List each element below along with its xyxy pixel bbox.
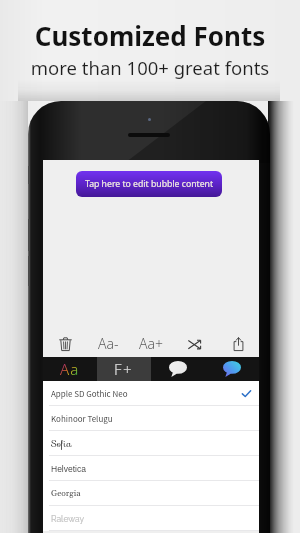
button[interactable]: Blue chat bubble bbox=[205, 357, 259, 381]
button[interactable]: Aa+ bbox=[133, 328, 170, 359]
staticText: Aa- bbox=[98, 334, 119, 353]
staticText: Kohinoor Telugu bbox=[51, 413, 113, 425]
button[interactable]: Aa bbox=[43, 357, 97, 381]
staticText: Aa bbox=[60, 359, 80, 379]
staticText: Customized Fonts bbox=[0, 18, 300, 53]
button[interactable]: Kohinoor Telugu bbox=[43, 406, 259, 431]
button[interactable]: Raleway bbox=[43, 506, 259, 531]
button[interactable]: Shuffle bbox=[184, 333, 206, 355]
staticText: Georgia bbox=[51, 488, 81, 499]
button[interactable]: Aa- bbox=[92, 328, 125, 359]
button[interactable]: Tap here to edit bubble content bbox=[76, 171, 222, 197]
button[interactable]: F+ bbox=[97, 357, 151, 381]
button[interactable]: Georgia bbox=[43, 481, 259, 506]
button[interactable]: Chat bubble bbox=[151, 357, 205, 381]
staticText: more than 100+ great fonts bbox=[0, 55, 300, 80]
button[interactable]: Share bbox=[227, 333, 249, 355]
staticText: F+ bbox=[114, 359, 134, 379]
staticText: Helvetica bbox=[51, 464, 86, 473]
staticText: Aa+ bbox=[139, 334, 164, 353]
button[interactable]: Apple SD Gothic Neo bbox=[43, 381, 259, 406]
staticText: Apple SD Gothic Neo bbox=[51, 388, 128, 400]
button[interactable]: Helvetica bbox=[43, 456, 259, 481]
button[interactable]: Delete bbox=[54, 333, 76, 355]
staticText: Raleway bbox=[51, 514, 85, 524]
button[interactable]: Sofia bbox=[43, 431, 259, 456]
staticText: Tap here to edit bubble content bbox=[85, 178, 214, 190]
staticText: Sofia bbox=[51, 436, 72, 451]
